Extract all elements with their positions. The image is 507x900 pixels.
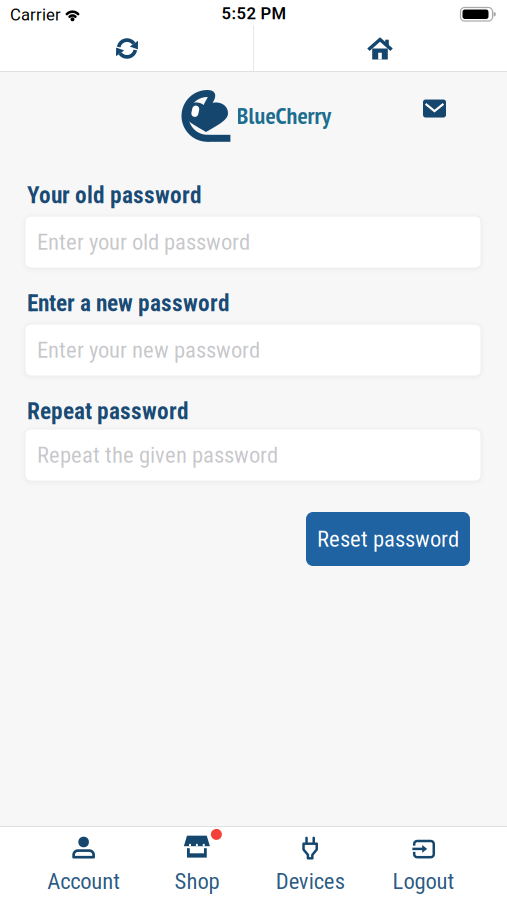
staticText: Shop <box>174 868 219 895</box>
staticText: 5:52 PM <box>221 4 286 23</box>
staticText: Repeat the given password <box>37 442 278 468</box>
button[interactable]: Reset password <box>306 512 470 566</box>
button[interactable]: Account <box>27 827 140 900</box>
staticText: Reset password <box>317 526 459 552</box>
staticText: Carrier <box>10 5 61 24</box>
staticText: Enter your old password <box>37 229 250 255</box>
staticText: Devices <box>276 868 345 895</box>
button[interactable]: Enter your old password <box>25 216 481 268</box>
staticText: Enter a new password <box>27 289 230 317</box>
staticText: BlueCherry <box>236 99 331 131</box>
button[interactable]: Logout <box>367 827 480 900</box>
button[interactable]: Shop <box>140 827 253 900</box>
button[interactable]: Home <box>327 27 433 69</box>
staticText: Your old password <box>27 181 202 209</box>
staticText: Logout <box>392 868 454 895</box>
button[interactable]: Repeat the given password <box>25 429 481 481</box>
button[interactable]: Refresh <box>74 27 179 69</box>
button[interactable]: Enter your new password <box>25 324 481 376</box>
staticText: Enter your new password <box>37 337 260 363</box>
button[interactable]: Devices <box>253 827 367 900</box>
staticText: Account <box>47 868 120 895</box>
staticText: Repeat password <box>27 397 189 425</box>
button[interactable]: Messages <box>415 91 454 125</box>
